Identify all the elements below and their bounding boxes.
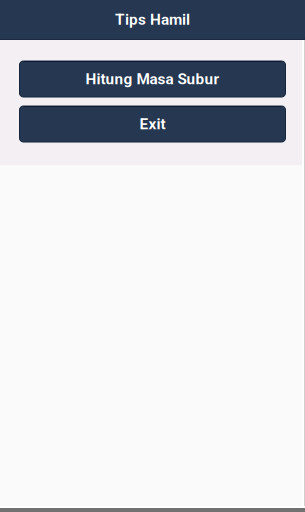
button[interactable]: Hitung Masa Subur <box>19 61 285 97</box>
staticText: Hitung Masa Subur <box>85 70 219 88</box>
staticText: Exit <box>139 115 165 133</box>
button[interactable]: Exit <box>19 106 285 142</box>
staticText: Tips Hamil <box>115 10 190 28</box>
